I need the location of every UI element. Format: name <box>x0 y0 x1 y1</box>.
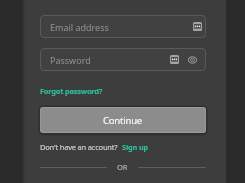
button[interactable]: Forgot password? <box>40 86 103 96</box>
button[interactable]: Continue <box>40 107 206 133</box>
staticText: Don't have an account? <box>40 142 118 152</box>
button[interactable]: Password <box>40 48 206 71</box>
button[interactable]: Email address <box>40 15 206 38</box>
button[interactable] <box>188 56 197 64</box>
staticText: Continue <box>103 114 143 127</box>
staticText: Email address <box>50 21 109 33</box>
staticText: Password <box>50 54 91 66</box>
button[interactable]: Sign up <box>122 142 149 152</box>
staticText: OR <box>117 162 128 172</box>
